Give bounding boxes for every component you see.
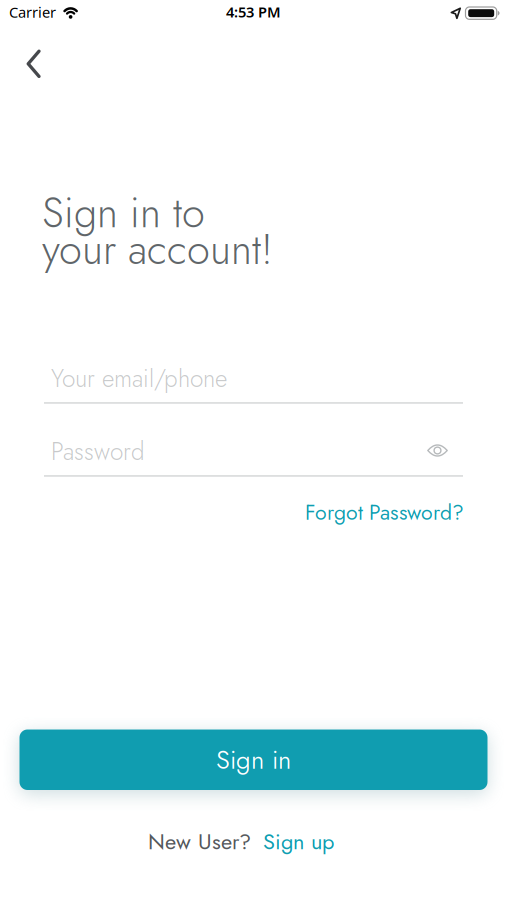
button[interactable]: Forgot Password?	[305, 497, 464, 528]
staticText: Your email/phone	[51, 361, 227, 396]
staticText: Carrier	[9, 2, 56, 22]
staticText: 4:53 PM	[226, 2, 281, 21]
staticText: Sign in to your account!	[42, 183, 273, 279]
button[interactable]: Your email/phone	[44, 358, 463, 404]
staticText: Sign up	[263, 826, 334, 857]
staticText: New User?	[148, 826, 251, 857]
button[interactable]: Show password	[421, 436, 454, 465]
staticText: Password	[51, 434, 145, 469]
button[interactable]: Back	[12, 42, 56, 86]
staticText: Forgot Password?	[305, 497, 464, 528]
button[interactable]: Sign up	[263, 826, 334, 857]
staticText: Sign in	[216, 741, 291, 778]
button[interactable]: Sign in	[19, 729, 487, 790]
button[interactable]: Password	[44, 431, 463, 477]
